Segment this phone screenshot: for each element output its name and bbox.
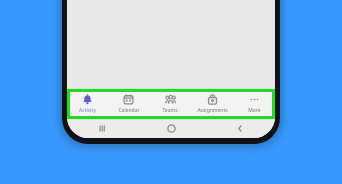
staticText: More <box>248 107 261 114</box>
staticText: Calendar <box>118 107 140 114</box>
staticText: Activity <box>79 107 96 114</box>
button[interactable]: More <box>233 89 275 119</box>
button[interactable]: Calendar <box>108 89 149 119</box>
button[interactable]: Recents <box>67 119 137 138</box>
staticText: Teams <box>162 107 178 114</box>
button[interactable]: Activity <box>67 89 108 119</box>
button[interactable]: Home <box>137 119 206 138</box>
staticText: Assignments <box>197 107 228 114</box>
button[interactable]: Assignments <box>191 89 233 119</box>
button[interactable]: Teams <box>149 89 191 119</box>
button[interactable]: Back <box>206 119 275 138</box>
